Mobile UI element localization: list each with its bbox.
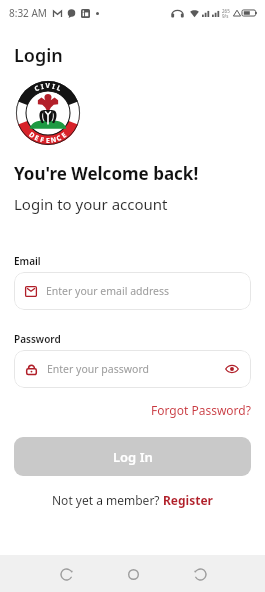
staticText: Login to your account [14,194,168,214]
staticText: Register [163,492,213,508]
button[interactable]: Enter your email address [14,272,251,310]
staticText: Log In [113,448,153,466]
button[interactable]: Home [120,561,146,587]
button[interactable]: Register [163,492,213,508]
staticText: Forgot Password? [151,402,251,418]
staticText: Not yet a member? [52,492,163,508]
staticText: 8:32 AM [9,6,47,20]
staticText: You're Welcome back! [14,162,199,185]
staticText: Enter your email address [46,284,170,298]
button[interactable]: Log In [14,437,251,476]
staticText: Password [14,332,61,346]
button[interactable]: Forgot Password? [151,402,251,418]
button[interactable]: Show password [223,360,241,378]
button[interactable]: Back [53,561,79,587]
button[interactable]: Enter your password [14,350,251,388]
staticText: Login [14,43,63,68]
staticText: Email [14,254,41,268]
staticText: Enter your password [47,362,149,376]
staticText: 265 9/s [222,8,230,19]
button[interactable]: Recent apps [187,561,213,587]
